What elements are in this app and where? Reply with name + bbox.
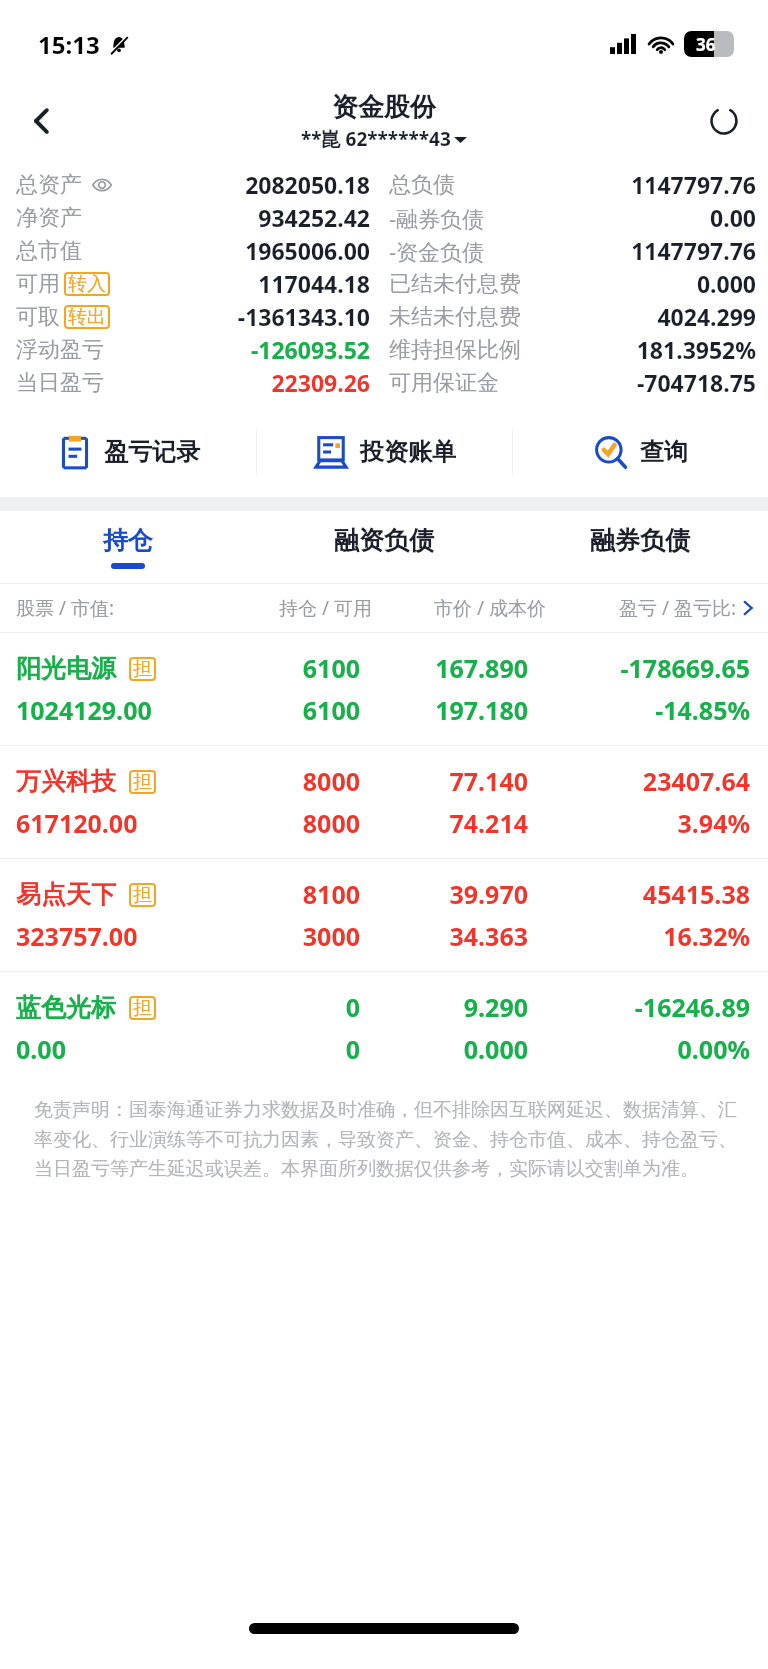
staticText: 1965006.00 xyxy=(196,235,370,266)
staticText: 934252.42 xyxy=(196,202,370,233)
staticText: 浮动盈亏 xyxy=(16,336,104,364)
staticText: 39.970 xyxy=(360,877,528,911)
button[interactable]: 融资负债 xyxy=(256,511,512,583)
staticText: 2082050.18 xyxy=(196,169,370,200)
staticText: 9.290 xyxy=(360,990,528,1024)
staticText: 4024.299 xyxy=(521,301,756,332)
staticText: 总市值 xyxy=(16,237,82,265)
staticText: 0.00% xyxy=(528,1032,750,1066)
staticText: -178669.65 xyxy=(528,651,750,685)
staticText: 8000 xyxy=(207,764,360,798)
staticText: -融券负债 xyxy=(389,203,485,233)
staticText: 总负债 xyxy=(389,171,455,199)
staticText: 0.00 xyxy=(485,202,756,233)
staticText: 持仓 xyxy=(103,525,153,556)
staticText: 45415.38 xyxy=(528,877,750,911)
staticText: 可用保证金 xyxy=(389,369,499,397)
staticText: 总资产 xyxy=(16,171,82,199)
staticText: 8100 xyxy=(207,877,360,911)
staticText: 盈亏记录 xyxy=(104,437,200,467)
button[interactable]: More columns xyxy=(736,596,760,620)
staticText: 可用 xyxy=(16,270,60,298)
staticText: 万兴科技 xyxy=(16,766,116,797)
staticText: 担 xyxy=(133,657,152,681)
staticText: 易点天下 xyxy=(16,879,116,910)
staticText: 市价 / 成本价 xyxy=(372,595,546,621)
staticText: 资金股份 xyxy=(332,91,436,124)
button[interactable]: 转出 xyxy=(64,305,110,329)
staticText: 8000 xyxy=(207,806,360,840)
staticText: 0.00 xyxy=(16,1032,207,1066)
staticText: 16.32% xyxy=(528,919,750,953)
staticText: 蓝色光标 xyxy=(16,992,116,1023)
staticText: -资金负债 xyxy=(389,236,485,266)
button[interactable]: 融券负债 xyxy=(512,511,768,583)
button[interactable]: 易点天下 xyxy=(0,859,768,971)
staticText: 6100 xyxy=(207,651,360,685)
staticText: 净资产 xyxy=(16,204,82,232)
staticText: 1024129.00 xyxy=(16,693,207,727)
button[interactable]: 蓝色光标 xyxy=(0,972,768,1084)
button[interactable]: 盈亏记录 xyxy=(0,413,256,491)
staticText: 投资账单 xyxy=(360,437,456,467)
staticText: 22309.26 xyxy=(196,367,370,398)
staticText: 1147797.76 xyxy=(485,235,756,266)
staticText: 617120.00 xyxy=(16,806,207,840)
staticText: 维持担保比例 xyxy=(389,336,521,364)
staticText: 0.000 xyxy=(521,268,756,299)
button[interactable]: 阳光电源 xyxy=(0,633,768,745)
staticText: 转出 xyxy=(68,305,106,329)
button[interactable]: Refresh xyxy=(696,93,752,149)
staticText: 免责声明：国泰海通证券力求数据及时准确，但不排除因互联网延迟、数据清算、汇率变化… xyxy=(34,1098,740,1180)
staticText: -1361343.10 xyxy=(196,301,370,332)
staticText: 3000 xyxy=(207,919,360,953)
staticText: -16246.89 xyxy=(528,990,750,1024)
button[interactable]: 查询 xyxy=(513,413,768,491)
staticText: 融券负债 xyxy=(590,525,690,556)
staticText: -704718.75 xyxy=(499,367,756,398)
staticText: 未结未付息费 xyxy=(389,303,521,331)
staticText: **崑 62******43 xyxy=(301,126,451,152)
button[interactable]: 投资账单 xyxy=(257,413,512,491)
staticText: 197.180 xyxy=(360,693,528,727)
button[interactable]: 持仓 xyxy=(0,511,256,583)
staticText: -126093.52 xyxy=(196,334,370,365)
staticText: 已结未付息费 xyxy=(389,270,521,298)
button[interactable]: 转入 xyxy=(64,272,110,296)
staticText: 担 xyxy=(133,770,152,794)
staticText: 167.890 xyxy=(360,651,528,685)
staticText: 36 xyxy=(696,33,716,56)
button[interactable]: Back xyxy=(14,93,70,149)
staticText: 181.3952% xyxy=(521,334,756,365)
staticText: 117044.18 xyxy=(196,268,370,299)
staticText: 查询 xyxy=(640,437,688,467)
staticText: -14.85% xyxy=(528,693,750,727)
staticText: 23407.64 xyxy=(528,764,750,798)
staticText: 转入 xyxy=(68,272,106,296)
staticText: 盈亏 / 盈亏比: xyxy=(546,595,736,621)
staticText: 阳光电源 xyxy=(16,653,116,684)
button[interactable]: 万兴科技 xyxy=(0,746,768,858)
staticText: 担 xyxy=(133,883,152,907)
staticText: 股票 / 市值: xyxy=(16,595,214,621)
staticText: 1147797.76 xyxy=(455,169,756,200)
staticText: 74.214 xyxy=(360,806,528,840)
button[interactable]: Toggle visibility xyxy=(91,174,113,196)
staticText: 持仓 / 可用 xyxy=(214,595,372,621)
staticText: 0 xyxy=(207,1032,360,1066)
staticText: 3.94% xyxy=(528,806,750,840)
staticText: 0 xyxy=(207,990,360,1024)
staticText: 融资负债 xyxy=(334,525,434,556)
staticText: 0.000 xyxy=(360,1032,528,1066)
staticText: 77.140 xyxy=(360,764,528,798)
staticText: 担 xyxy=(133,996,152,1020)
button[interactable]: **崑 62******43 xyxy=(301,126,467,152)
staticText: 6100 xyxy=(207,693,360,727)
staticText: 可取 xyxy=(16,303,60,331)
staticText: 34.363 xyxy=(360,919,528,953)
staticText: 当日盈亏 xyxy=(16,369,104,397)
staticText: 323757.00 xyxy=(16,919,207,953)
staticText: 15:13 xyxy=(38,28,100,61)
